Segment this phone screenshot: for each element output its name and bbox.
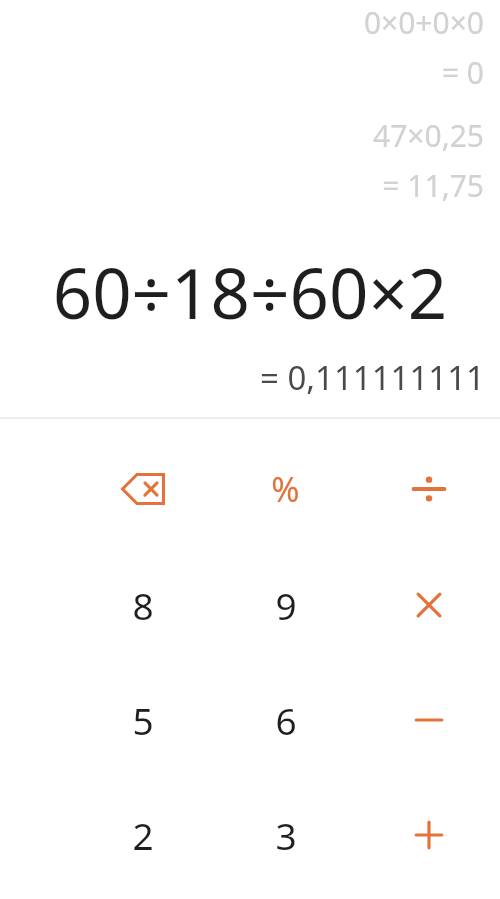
button[interactable]: Minus xyxy=(357,662,500,777)
button[interactable]: % xyxy=(214,431,357,547)
other: Plus xyxy=(413,819,445,851)
staticText: 5 xyxy=(132,695,154,745)
button[interactable]: 5 xyxy=(72,662,214,777)
button[interactable]: Backspace xyxy=(72,431,214,547)
button[interactable]: Plus xyxy=(357,777,500,892)
other: Multiply xyxy=(413,589,445,621)
staticText: 2 xyxy=(132,810,154,860)
button[interactable]: 2 xyxy=(72,777,214,892)
other: Divide xyxy=(411,471,447,507)
staticText: % xyxy=(271,466,300,512)
button[interactable]: 8 xyxy=(72,547,214,662)
staticText: = 11,75 xyxy=(0,165,484,206)
other: Backspace xyxy=(121,473,165,505)
staticText: 47×0,25 xyxy=(0,115,484,156)
button[interactable]: Multiply xyxy=(357,547,500,662)
staticText: = 0,111111111 xyxy=(0,355,485,400)
staticText: 3 xyxy=(275,810,297,860)
button[interactable]: 3 xyxy=(214,777,357,892)
button[interactable]: Divide xyxy=(357,431,500,547)
staticText: 9 xyxy=(275,580,297,630)
staticText: 6 xyxy=(275,695,297,745)
staticText: 60÷18÷60×2 xyxy=(0,245,500,339)
staticText: 8 xyxy=(132,580,154,630)
staticText: = 0 xyxy=(0,52,484,93)
other: Minus xyxy=(413,704,445,736)
button[interactable]: 6 xyxy=(214,662,357,777)
staticText: 0×0+0×0 xyxy=(0,2,484,43)
button[interactable]: 9 xyxy=(214,547,357,662)
